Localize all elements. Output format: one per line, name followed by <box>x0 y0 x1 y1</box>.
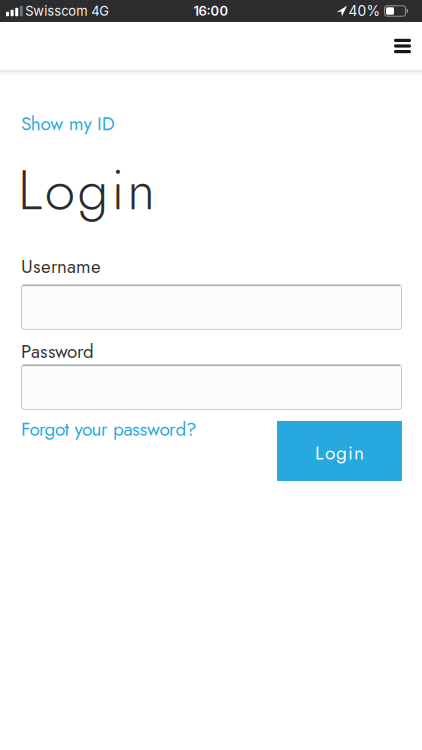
staticText: 4G <box>91 3 109 19</box>
button[interactable]: Menu <box>383 31 422 61</box>
staticText: Show my ID <box>21 110 115 137</box>
staticText: Login <box>315 439 364 467</box>
staticText: Swisscom <box>25 3 87 19</box>
staticText: 16:00 <box>193 3 228 19</box>
staticText: o <box>45 150 75 230</box>
staticText: n <box>127 150 155 230</box>
button[interactable]: Login <box>277 421 402 481</box>
staticText: g <box>78 150 109 230</box>
button[interactable]: Show my ID <box>21 110 115 137</box>
staticText: i <box>111 150 124 230</box>
staticText: L <box>18 150 42 230</box>
button[interactable]: Forgot your password? <box>21 415 197 443</box>
staticText: Forgot your password? <box>21 415 197 443</box>
staticText: 40% <box>348 3 380 19</box>
staticText: Username <box>21 253 101 280</box>
staticText: Password <box>21 338 94 365</box>
button[interactable]: Password <box>21 364 402 410</box>
button[interactable]: Username <box>21 284 402 330</box>
